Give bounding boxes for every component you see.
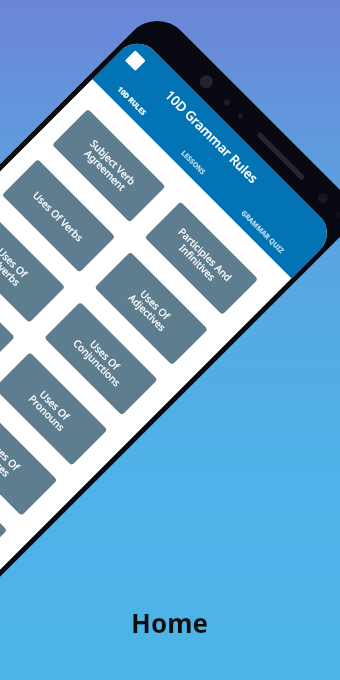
button[interactable]: Uses Of Conjunctions bbox=[44, 302, 158, 416]
staticText: Home bbox=[131, 605, 209, 640]
button[interactable]: Uses Of Pronouns bbox=[0, 352, 108, 466]
button[interactable]: LESSONS bbox=[154, 124, 232, 202]
staticText: Uses Of Verbs bbox=[30, 188, 86, 244]
staticText: Subject Verb Agreement bbox=[79, 136, 139, 196]
staticText: Uses Of Adjectives bbox=[125, 283, 177, 334]
staticText: Uses Of Adverbs bbox=[0, 244, 31, 289]
button[interactable]: Subject Verb Agreement bbox=[52, 109, 166, 222]
button[interactable]: Uses Of Adjectives bbox=[94, 252, 208, 365]
staticText: Uses Of Tenses bbox=[0, 437, 23, 481]
staticText: LESSONS bbox=[178, 148, 207, 177]
button[interactable]: Participles And Infinitives bbox=[0, 452, 7, 566]
staticText: Participles And Infinitives bbox=[168, 225, 235, 292]
staticText: 10D Grammar Rules bbox=[161, 86, 262, 187]
button[interactable]: Uses Of Adverbs bbox=[0, 209, 65, 323]
button[interactable]: 10D RULES bbox=[92, 62, 171, 141]
button[interactable]: Uses Of Prepositions bbox=[0, 259, 15, 373]
other: App icon bbox=[125, 50, 146, 71]
staticText: 10D RULES bbox=[115, 85, 148, 118]
staticText: Uses Of Pronouns bbox=[26, 384, 76, 434]
button[interactable]: Participles And Infinitives bbox=[144, 201, 258, 315]
staticText: GRAMMAR QUIZ bbox=[238, 208, 286, 256]
button[interactable]: Uses Of Tenses bbox=[0, 402, 57, 516]
staticText: Uses Of Conjunctions bbox=[70, 328, 132, 389]
button[interactable]: GRAMMAR QUIZ bbox=[215, 185, 308, 278]
button[interactable]: Uses Of Verbs bbox=[2, 159, 115, 273]
